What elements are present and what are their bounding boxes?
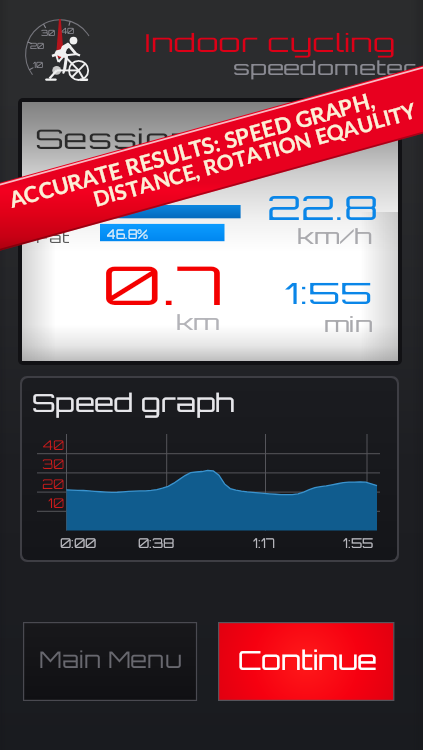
button[interactable]: Continue: [218, 622, 394, 700]
button[interactable]: Main Menu: [23, 622, 196, 700]
